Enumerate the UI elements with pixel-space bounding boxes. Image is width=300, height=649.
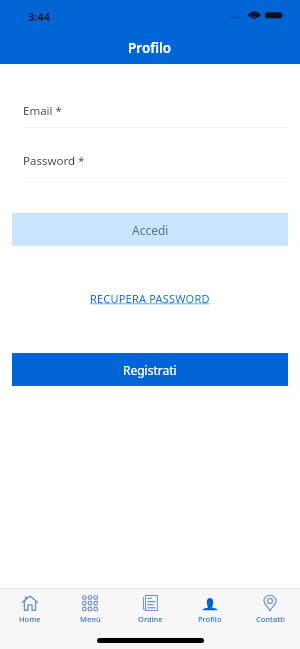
button[interactable]: Profilo bbox=[180, 595, 240, 649]
button[interactable]: Email * bbox=[0, 103, 300, 128]
staticText: Profilo bbox=[128, 39, 172, 57]
staticText: Password * bbox=[23, 153, 85, 169]
other: Ordine bbox=[142, 595, 158, 611]
staticText: Accedi bbox=[132, 222, 169, 238]
button[interactable]: Menù bbox=[60, 595, 120, 649]
button[interactable]: Ordine bbox=[120, 595, 180, 649]
staticText: Profilo bbox=[198, 614, 222, 624]
staticText: Menù bbox=[80, 614, 101, 624]
staticText: Registrati bbox=[123, 362, 177, 378]
staticText: Ordine bbox=[138, 614, 163, 624]
staticText: Home bbox=[19, 614, 41, 624]
other: Profilo bbox=[202, 595, 218, 611]
other: Contatti bbox=[262, 595, 278, 611]
button[interactable]: Contatti bbox=[240, 595, 300, 649]
other: Home bbox=[22, 595, 38, 611]
staticText: RECUPERA PASSWORD bbox=[90, 291, 210, 306]
other: Menù bbox=[82, 595, 98, 611]
button[interactable]: Accedi bbox=[12, 213, 288, 246]
button[interactable]: Registrati bbox=[12, 353, 288, 386]
staticText: 3:44 bbox=[28, 9, 50, 24]
staticText: Email * bbox=[23, 103, 62, 119]
staticText: Contatti bbox=[256, 614, 285, 624]
button[interactable]: RECUPERA PASSWORD bbox=[88, 291, 212, 306]
button[interactable]: Password * bbox=[0, 153, 300, 178]
button[interactable]: Home bbox=[0, 595, 60, 649]
